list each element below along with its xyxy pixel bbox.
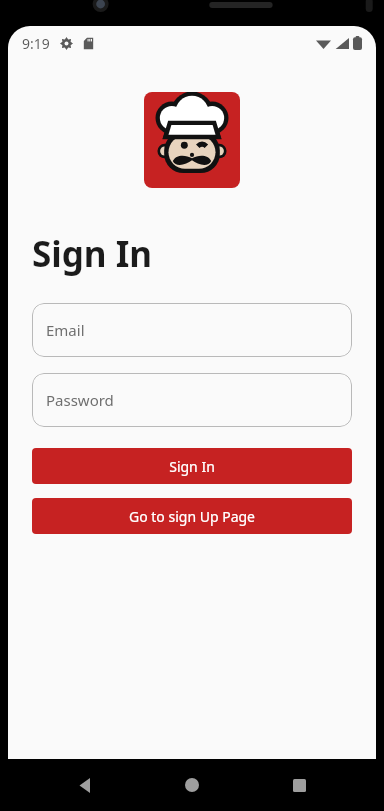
- button[interactable]: Email: [32, 303, 352, 357]
- staticText: Password: [46, 390, 114, 410]
- button[interactable]: Password: [32, 373, 352, 427]
- staticText: Email: [46, 320, 85, 340]
- button[interactable]: Home: [170, 763, 214, 807]
- staticText: 9:19: [22, 34, 50, 53]
- button[interactable]: Sign In: [32, 448, 352, 484]
- staticText: Sign In: [32, 230, 153, 278]
- button[interactable]: Back: [63, 763, 107, 807]
- staticText: Go to sign Up Page: [129, 507, 255, 526]
- button[interactable]: Recent apps: [277, 763, 321, 807]
- button[interactable]: Go to sign Up Page: [32, 498, 352, 534]
- staticText: Sign In: [169, 457, 215, 476]
